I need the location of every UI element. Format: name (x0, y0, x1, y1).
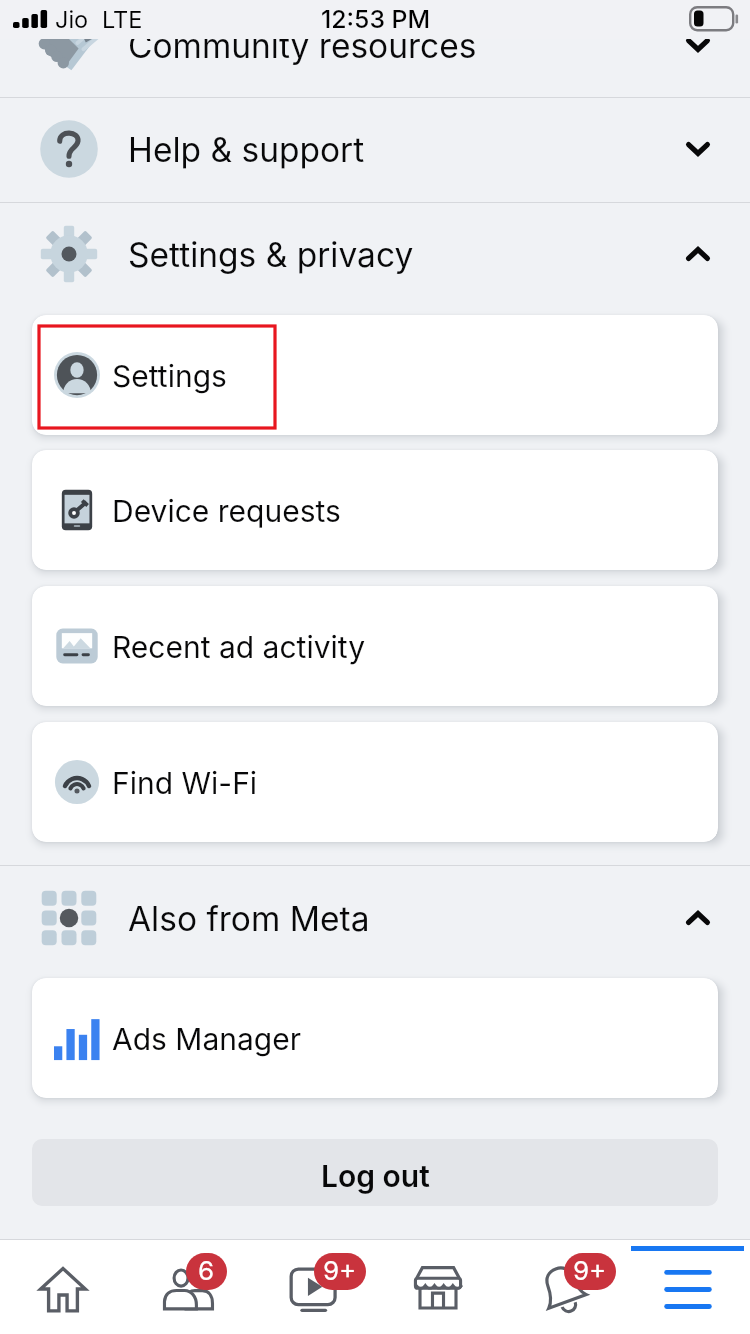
staticText: Also from Meta (128, 899, 370, 940)
staticText: Settings (112, 358, 227, 394)
staticText: Settings & privacy (128, 235, 414, 276)
button[interactable]: Community resources (0, 0, 750, 98)
button[interactable]: Find Wi-Fi (32, 722, 718, 842)
button[interactable]: Also from Meta (0, 866, 750, 971)
staticText: Ads Manager (112, 1021, 302, 1057)
button[interactable]: Ads Manager (32, 978, 718, 1098)
staticText: 12:53 PM (321, 4, 431, 34)
button[interactable]: Settings & privacy (0, 202, 750, 307)
button[interactable]: Notifications (500, 1239, 625, 1334)
staticText: Device requests (112, 493, 341, 529)
staticText: Help & support (128, 130, 365, 171)
button[interactable]: Menu (625, 1239, 750, 1334)
button[interactable]: Friends (125, 1239, 250, 1334)
staticText: Community resources (128, 26, 477, 67)
button[interactable]: Home (0, 1239, 125, 1334)
staticText: 6 (198, 1255, 215, 1286)
staticText: 9+ (573, 1255, 607, 1286)
button[interactable]: Log out (32, 1139, 718, 1206)
staticText: LTE (102, 5, 143, 33)
button[interactable]: Help & support (0, 97, 750, 202)
staticText: Find Wi-Fi (112, 765, 258, 801)
staticText: 9+ (323, 1255, 357, 1286)
staticText: Log out (321, 1158, 430, 1194)
staticText: Jio (55, 5, 89, 33)
button[interactable]: Device requests (32, 450, 718, 570)
staticText: Recent ad activity (112, 629, 366, 665)
button[interactable]: Marketplace (375, 1239, 500, 1334)
button[interactable]: Recent ad activity (32, 586, 718, 706)
button[interactable]: Video (250, 1239, 375, 1334)
button[interactable]: Settings (32, 315, 718, 435)
